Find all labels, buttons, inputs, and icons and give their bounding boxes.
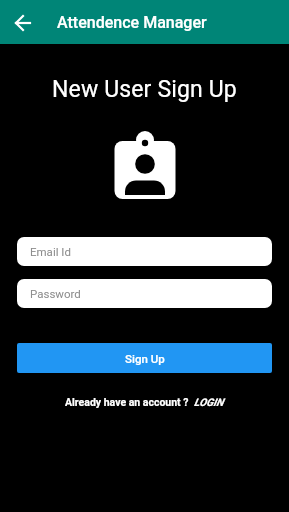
staticText: LOGIN [194, 396, 224, 408]
staticText: New User Sign Up [52, 76, 237, 103]
staticText: Sign Up [125, 352, 165, 365]
button[interactable]: Email Id [17, 237, 272, 266]
staticText: Already have an account ? [65, 396, 192, 408]
button[interactable] [9, 9, 36, 36]
button[interactable]: Password [17, 279, 272, 308]
button[interactable]: Sign Up [17, 343, 272, 373]
staticText: Email Id [30, 245, 71, 258]
button[interactable]: Already have an account ? [65, 396, 224, 408]
staticText: Password [30, 287, 81, 300]
staticText: Attendence Manager [57, 13, 207, 32]
